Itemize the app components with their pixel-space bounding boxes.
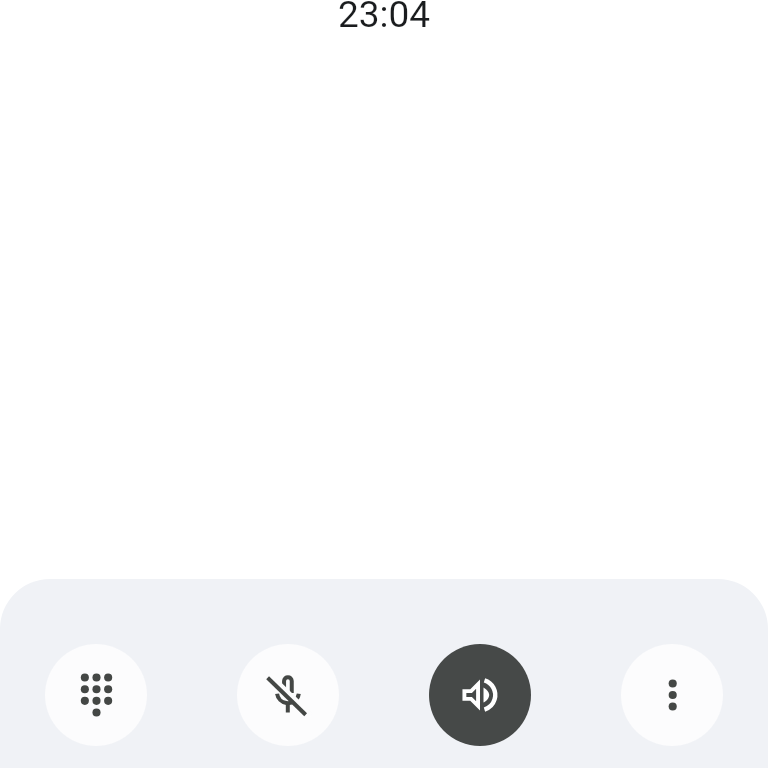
button[interactable]: Mute microphone xyxy=(237,644,339,746)
button[interactable]: Dialpad xyxy=(45,644,147,746)
button[interactable]: Speaker xyxy=(429,644,531,746)
button[interactable]: More options xyxy=(621,644,723,746)
staticText: 23:04 xyxy=(0,0,768,36)
